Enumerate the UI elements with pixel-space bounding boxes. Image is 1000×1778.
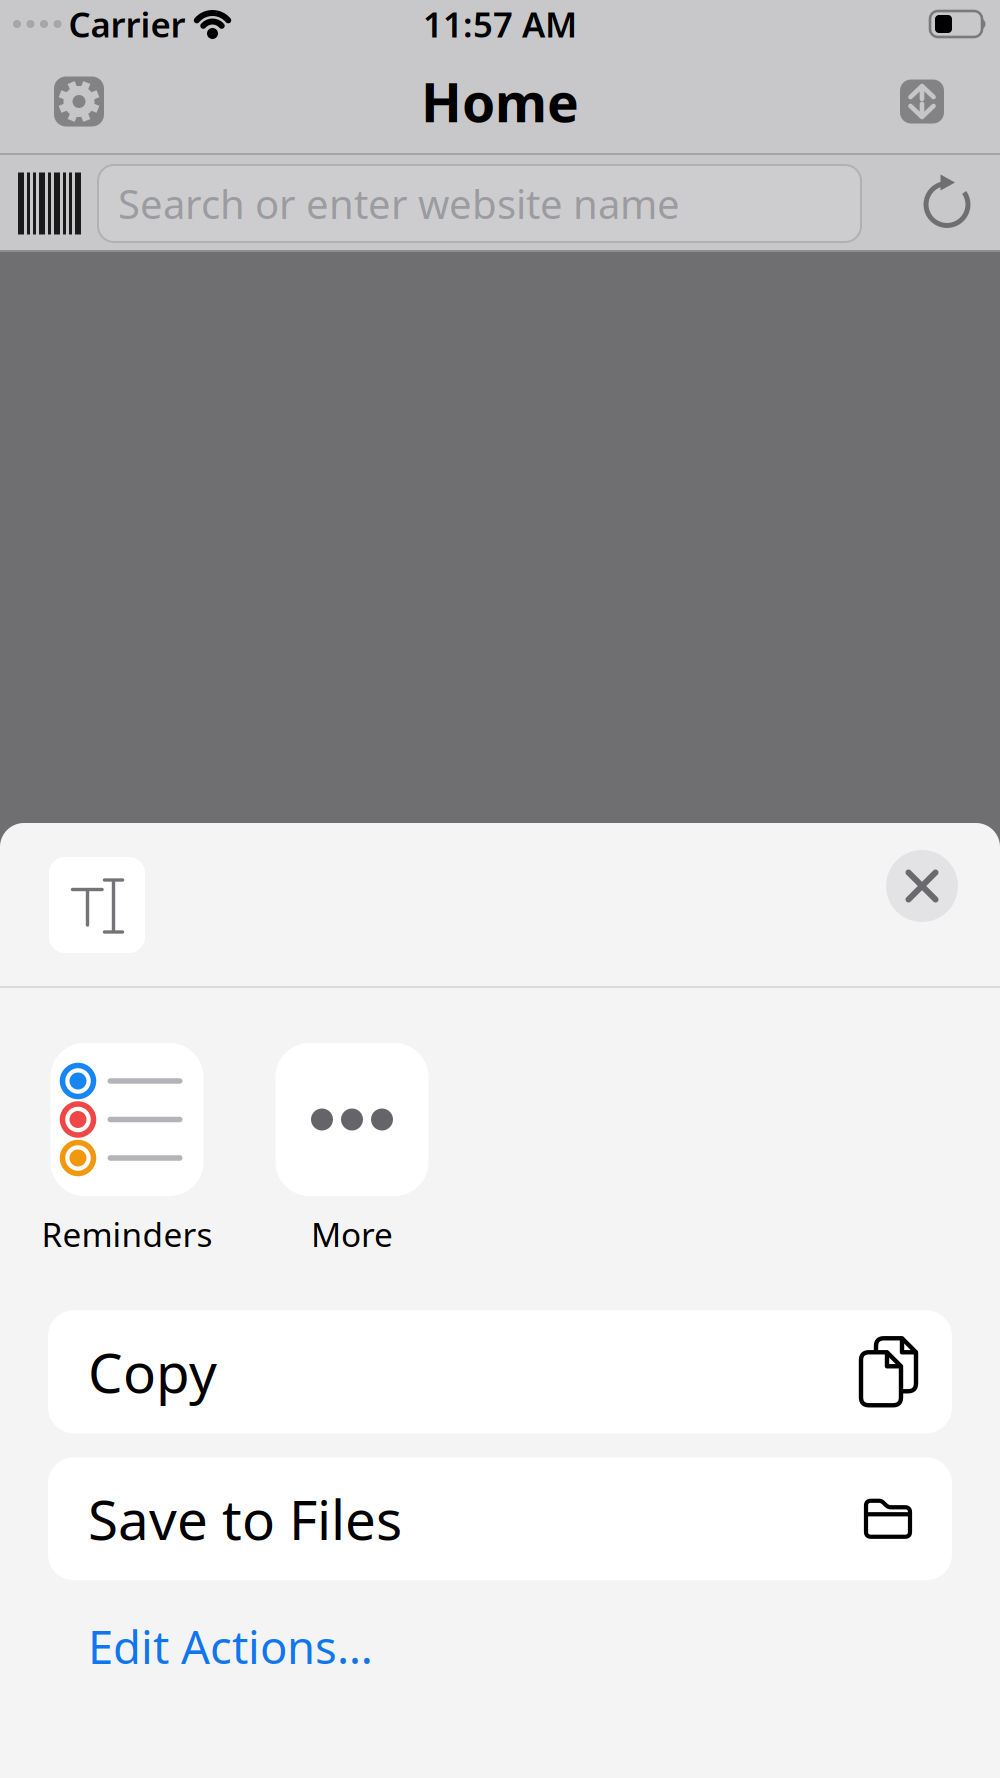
staticText: Home	[421, 66, 579, 137]
staticText: Copy	[88, 1335, 217, 1408]
button[interactable]	[924, 178, 970, 228]
button[interactable]: Copy	[48, 1310, 952, 1433]
button[interactable]	[54, 76, 104, 126]
button[interactable]: More	[252, 1043, 452, 1256]
button[interactable]	[886, 850, 958, 922]
staticText: Carrier	[68, 1, 185, 47]
button[interactable]: Reminders	[27, 1043, 227, 1256]
staticText: Save to Files	[88, 1482, 402, 1555]
staticText: More	[311, 1212, 393, 1256]
staticText: Reminders	[41, 1212, 212, 1256]
button[interactable]: Save to Files	[48, 1457, 952, 1580]
staticText: Edit Actions…	[88, 1616, 373, 1676]
staticText: Search or enter website name	[118, 177, 680, 230]
button[interactable]: Search or enter website name	[98, 165, 861, 242]
staticText: 11:57 AM	[423, 1, 577, 47]
button[interactable]	[900, 79, 944, 123]
button[interactable]: Edit Actions…	[88, 1616, 373, 1676]
button[interactable]	[18, 172, 81, 234]
